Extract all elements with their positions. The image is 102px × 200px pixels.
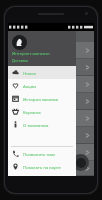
button[interactable]: Акции — [8, 79, 76, 92]
staticText: Корзина — [23, 109, 41, 115]
button[interactable] — [8, 93, 94, 110]
button[interactable] — [8, 144, 94, 161]
button[interactable]: Корзина — [8, 105, 76, 118]
staticText: Акции — [23, 83, 36, 89]
button[interactable] — [8, 161, 94, 176]
button[interactable] — [8, 76, 94, 93]
staticText: Позвонить нам — [23, 151, 55, 157]
button[interactable]: О компании — [8, 118, 76, 131]
staticText: История заказов — [23, 96, 58, 102]
button[interactable]: История заказов — [8, 92, 76, 105]
staticText: Интернет-магазин — [12, 51, 50, 57]
staticText: О компании — [23, 122, 49, 128]
button[interactable] — [8, 59, 94, 76]
button[interactable] — [8, 110, 94, 127]
button[interactable]: Позвонить нам — [8, 147, 76, 160]
staticText: Новое — [23, 70, 37, 76]
button[interactable]: Новое — [8, 66, 76, 79]
button[interactable] — [8, 127, 94, 144]
staticText: Показать на карте — [23, 164, 61, 170]
button[interactable]: Add — [72, 154, 89, 171]
button[interactable] — [8, 42, 94, 59]
button[interactable]: Показать на карте — [8, 160, 76, 173]
staticText: Доставка — [12, 58, 29, 63]
button[interactable]: Интернет-магазин — [8, 31, 76, 66]
